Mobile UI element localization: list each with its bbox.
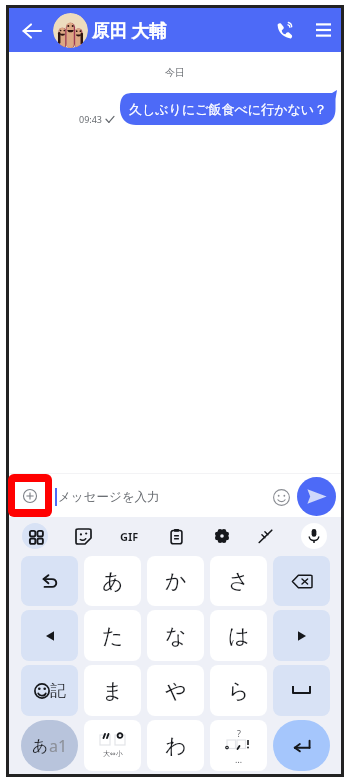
button[interactable]: か <box>147 556 204 606</box>
button[interactable]: 記 <box>21 665 78 716</box>
staticText: ま <box>102 678 124 704</box>
button[interactable]: Menu <box>307 14 339 46</box>
button[interactable]: Handwriting <box>252 523 278 549</box>
button[interactable]: Add attachment <box>15 482 45 509</box>
button[interactable]: あ <box>21 720 78 771</box>
staticText: わ <box>165 733 187 759</box>
button[interactable]: Clipboard <box>163 523 189 549</box>
staticText: 今日 <box>165 66 185 79</box>
staticText: ら <box>228 678 250 704</box>
button[interactable] <box>273 556 330 606</box>
staticText: あ <box>32 736 49 756</box>
button[interactable] <box>273 720 330 771</box>
button[interactable]: た <box>84 610 141 661</box>
button[interactable]: Back <box>16 15 48 47</box>
button[interactable]: わ <box>147 720 204 771</box>
button[interactable]: Apps <box>22 523 48 549</box>
staticText: や <box>165 678 187 704</box>
button[interactable]: ら <box>210 665 267 716</box>
staticText: 原田 大輔 <box>92 18 167 42</box>
staticText: ? <box>237 727 241 739</box>
button[interactable] <box>273 610 330 661</box>
staticText: 09:43 <box>79 113 103 125</box>
button[interactable]: Settings <box>209 523 235 549</box>
staticText: か <box>165 568 187 594</box>
staticText: a1 <box>49 735 68 757</box>
staticText: 大⇔小 <box>103 749 123 758</box>
button[interactable]: Emoji <box>266 482 296 512</box>
staticText: は <box>228 623 250 649</box>
button[interactable] <box>21 610 78 661</box>
button[interactable]: ? <box>210 720 267 771</box>
staticText: … <box>235 753 243 765</box>
button[interactable]: は <box>210 610 267 661</box>
button[interactable] <box>21 556 78 606</box>
staticText: 記 <box>50 681 66 701</box>
button[interactable]: さ <box>210 556 267 606</box>
button[interactable]: GIF <box>116 523 142 549</box>
staticText: さ <box>228 568 250 594</box>
button[interactable]: Call <box>268 14 300 46</box>
button[interactable]: な <box>147 610 204 661</box>
button[interactable]: 大⇔小 <box>84 720 141 771</box>
button[interactable]: Send <box>297 477 336 516</box>
staticText: た <box>102 623 124 649</box>
button[interactable]: Stickers <box>70 523 96 549</box>
button[interactable]: Voice input <box>301 523 327 549</box>
button[interactable]: あ <box>84 556 141 606</box>
button[interactable] <box>273 665 330 716</box>
staticText: な <box>165 623 187 649</box>
staticText: 久しぶりにご飯食べに行かない？ <box>129 101 328 117</box>
staticText: あ <box>102 568 124 594</box>
staticText: GIF <box>120 529 139 544</box>
staticText: メッセージを入力 <box>58 489 160 505</box>
button[interactable]: や <box>147 665 204 716</box>
button[interactable]: ま <box>84 665 141 716</box>
